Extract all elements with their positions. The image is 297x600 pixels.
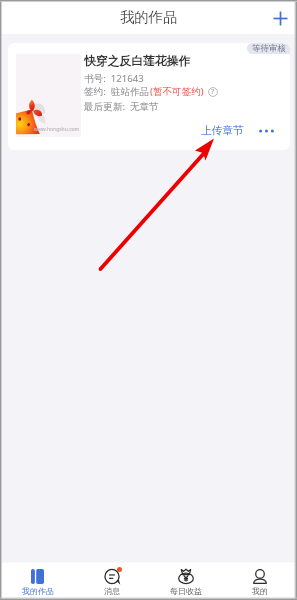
staticText: 快穿之反白莲花操作 [84, 54, 191, 69]
staticText: 我的作品 [22, 586, 54, 596]
button[interactable]: 更多 [255, 120, 277, 142]
button[interactable]: 上传章节 [199, 121, 246, 140]
staticText: ? [211, 87, 215, 97]
staticText: 最后更新: 无章节 [84, 100, 159, 113]
button[interactable]: 我的作品 [0, 563, 75, 600]
staticText: 签约: 驻站作品 [84, 85, 150, 98]
button[interactable]: www.hongshu.com [8, 43, 290, 150]
staticText: 上传章节 [201, 124, 244, 137]
button[interactable]: 新建作品 [269, 7, 291, 29]
staticText: 每日收益 [170, 586, 202, 596]
staticText: 书号: 121643 [84, 72, 144, 85]
button[interactable]: 消息 [75, 563, 149, 600]
staticText: 我的作品 [120, 8, 178, 26]
staticText: 等待审核 [252, 43, 286, 54]
staticText: www.hongshu.com [34, 126, 80, 133]
staticText: 我的 [252, 586, 268, 596]
staticText: 消息 [104, 586, 120, 596]
button[interactable]: 我的 [223, 563, 297, 600]
button[interactable]: 每日收益 [149, 563, 223, 600]
staticText: (暂不可签约) [150, 85, 204, 98]
